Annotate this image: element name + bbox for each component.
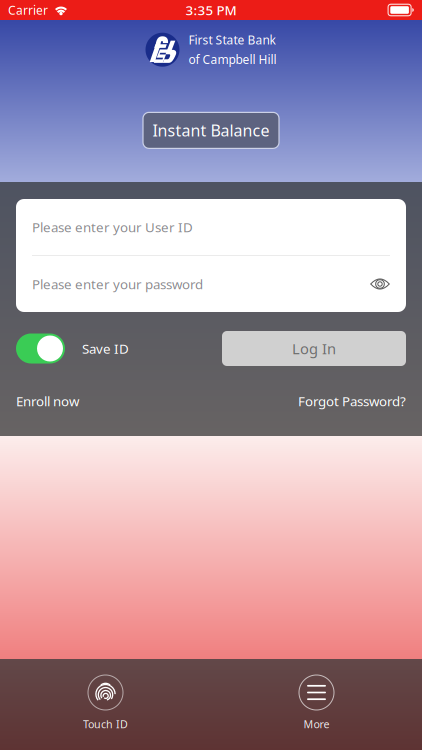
button[interactable]: Instant Balance bbox=[143, 112, 279, 148]
button[interactable]: Please enter your User ID bbox=[32, 199, 390, 255]
staticText: Instant Balance bbox=[152, 120, 269, 141]
button[interactable]: Please enter your password bbox=[32, 256, 390, 312]
staticText: of Campbell Hill bbox=[188, 51, 276, 67]
button[interactable]: Log In bbox=[222, 331, 406, 366]
button[interactable]: Save ID bbox=[16, 331, 129, 365]
button[interactable]: Touch ID bbox=[0, 659, 211, 750]
staticText: Enroll now bbox=[16, 392, 79, 410]
staticText: Save ID bbox=[82, 340, 129, 357]
button[interactable]: More bbox=[211, 659, 422, 750]
staticText: Touch ID bbox=[83, 717, 128, 731]
staticText: Please enter your User ID bbox=[32, 218, 193, 236]
staticText: Log In bbox=[292, 339, 336, 358]
staticText: 3:35 PM bbox=[185, 1, 236, 19]
staticText: Carrier bbox=[8, 2, 48, 18]
staticText: Please enter your password bbox=[32, 275, 203, 293]
button[interactable]: Forgot Password? bbox=[298, 392, 406, 410]
staticText: Forgot Password? bbox=[298, 392, 406, 410]
staticText: First State Bank bbox=[188, 32, 275, 48]
staticText: More bbox=[303, 717, 329, 731]
button[interactable]: Enroll now bbox=[16, 392, 79, 410]
